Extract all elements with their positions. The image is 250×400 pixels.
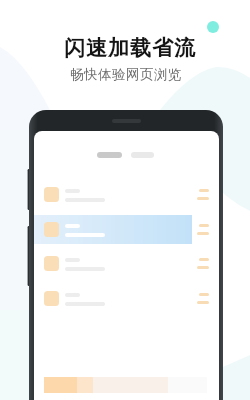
- staticText: 闪速加载省流: [5, 35, 250, 400]
- staticText: 畅快体验网页浏览: [1, 66, 250, 400]
- button[interactable]: List item: [34, 284, 219, 313]
- button[interactable]: Tab one: [97, 152, 122, 158]
- button[interactable]: List item: [34, 215, 219, 244]
- button[interactable]: List item: [34, 249, 219, 278]
- button[interactable]: Tab two: [131, 152, 154, 158]
- button[interactable]: List item: [34, 180, 219, 209]
- button[interactable]: Loading progress: [44, 377, 207, 393]
